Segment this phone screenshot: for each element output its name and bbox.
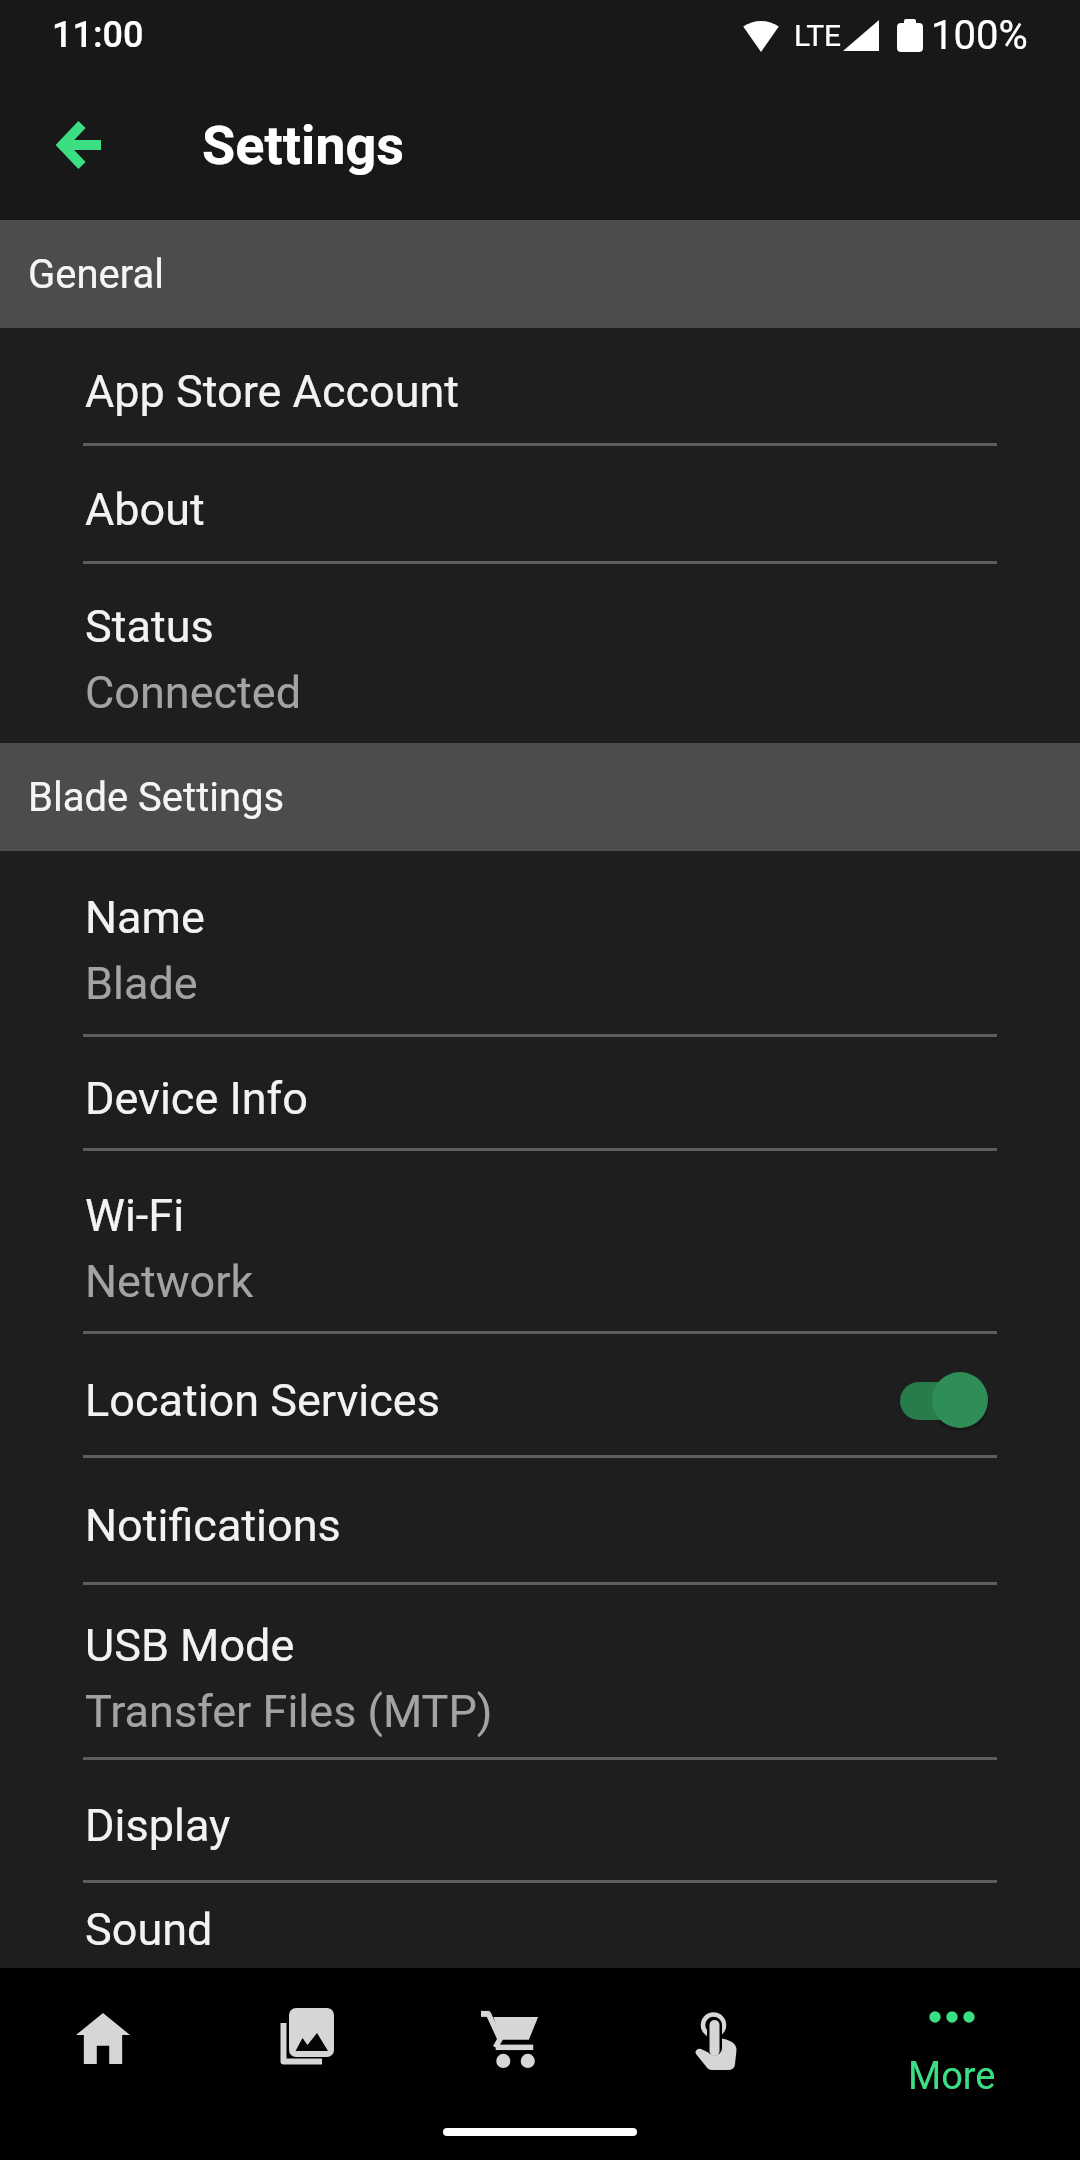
staticText: Name: [85, 891, 205, 944]
button[interactable]: [0, 1968, 206, 2108]
button[interactable]: USB Mode: [0, 1585, 1080, 1760]
staticText: App Store Account: [85, 365, 460, 418]
button[interactable]: Display: [0, 1760, 1080, 1883]
button[interactable]: Device Info: [0, 1037, 1080, 1151]
staticText: LTE: [794, 18, 842, 53]
button[interactable]: Name: [0, 851, 1080, 1037]
staticText: 11:00: [52, 14, 144, 56]
staticText: 100%: [931, 12, 1028, 59]
staticText: USB Mode: [85, 1619, 295, 1672]
staticText: Blade: [85, 957, 198, 1010]
button[interactable]: [41, 105, 121, 185]
staticText: Notifications: [85, 1499, 341, 1552]
staticText: Settings: [202, 114, 405, 177]
button[interactable]: [412, 1968, 618, 2108]
button[interactable]: More: [824, 1968, 1080, 2108]
button[interactable]: Sound: [0, 1883, 1080, 1968]
staticText: Display: [85, 1799, 231, 1852]
staticText: More: [908, 2054, 996, 2099]
staticText: Network: [85, 1255, 254, 1308]
button[interactable]: Notifications: [0, 1458, 1080, 1585]
staticText: Status: [85, 600, 214, 653]
button[interactable]: Location Services: [0, 1334, 1080, 1458]
staticText: Device Info: [85, 1072, 308, 1125]
staticText: Transfer Files (MTP): [85, 1685, 493, 1738]
button[interactable]: [618, 1968, 824, 2108]
staticText: Location Services: [85, 1374, 440, 1427]
staticText: Sound: [85, 1903, 213, 1956]
staticText: Connected: [85, 666, 302, 719]
button[interactable]: About: [0, 446, 1080, 564]
staticText: Blade Settings: [28, 774, 285, 821]
button[interactable]: Wi-Fi: [0, 1151, 1080, 1334]
staticText: Wi-Fi: [85, 1189, 185, 1242]
button[interactable]: Status: [0, 564, 1080, 743]
button[interactable]: App Store Account: [0, 328, 1080, 446]
staticText: General: [28, 251, 165, 298]
staticText: About: [85, 483, 205, 536]
button[interactable]: [206, 1968, 412, 2108]
